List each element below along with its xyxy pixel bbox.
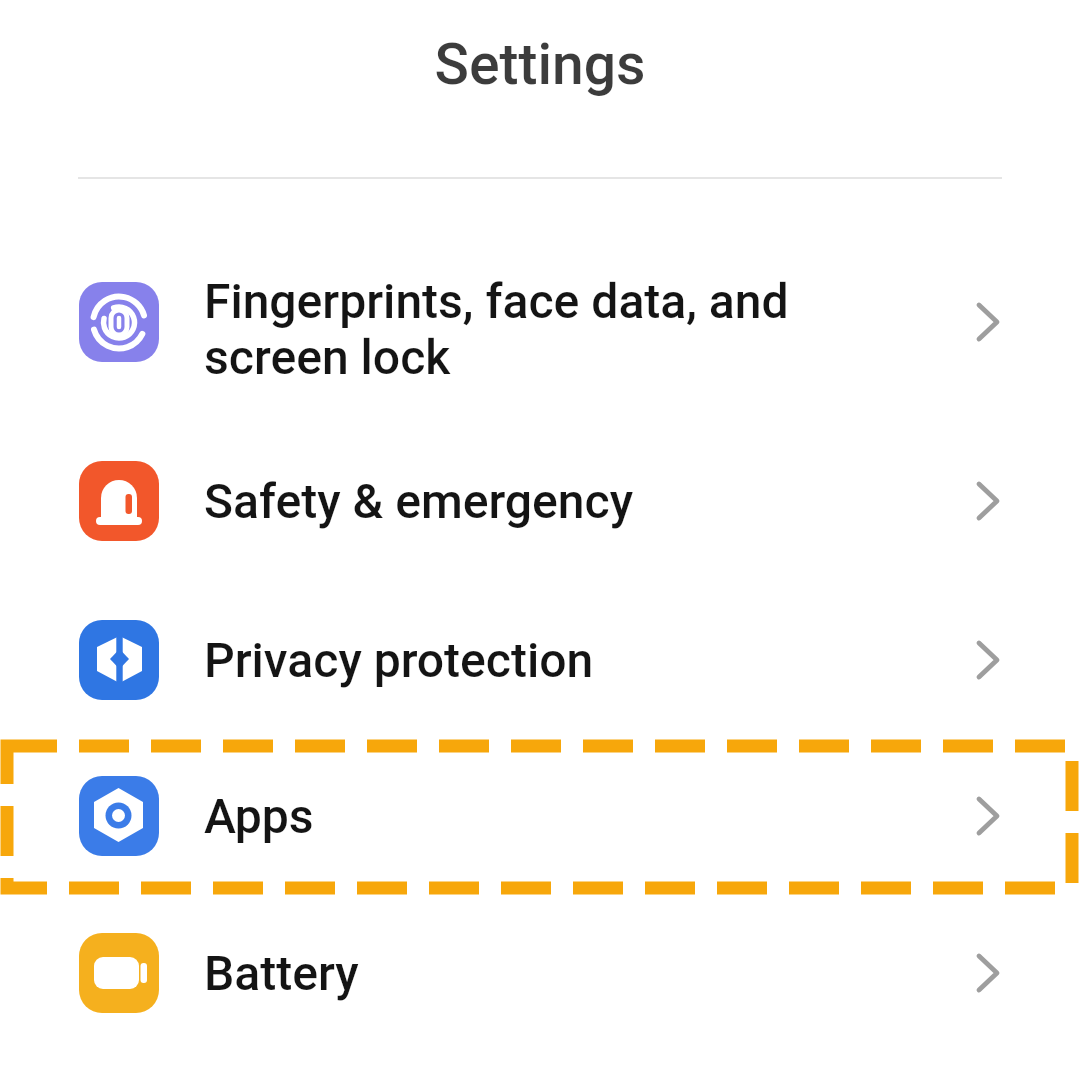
button[interactable]: [0, 582, 1080, 738]
staticText: screen lock: [204, 329, 451, 385]
button[interactable]: [0, 423, 1080, 579]
button[interactable]: [0, 895, 1080, 1051]
button[interactable]: [0, 738, 1080, 894]
staticText: Apps: [204, 788, 314, 844]
staticText: Fingerprints, face data, and: [204, 273, 789, 329]
staticText: Settings: [0, 31, 1080, 98]
staticText: Privacy protection: [204, 632, 594, 688]
button[interactable]: [0, 242, 1080, 402]
staticText: Battery: [204, 945, 359, 1001]
staticText: Safety & emergency: [204, 473, 634, 529]
